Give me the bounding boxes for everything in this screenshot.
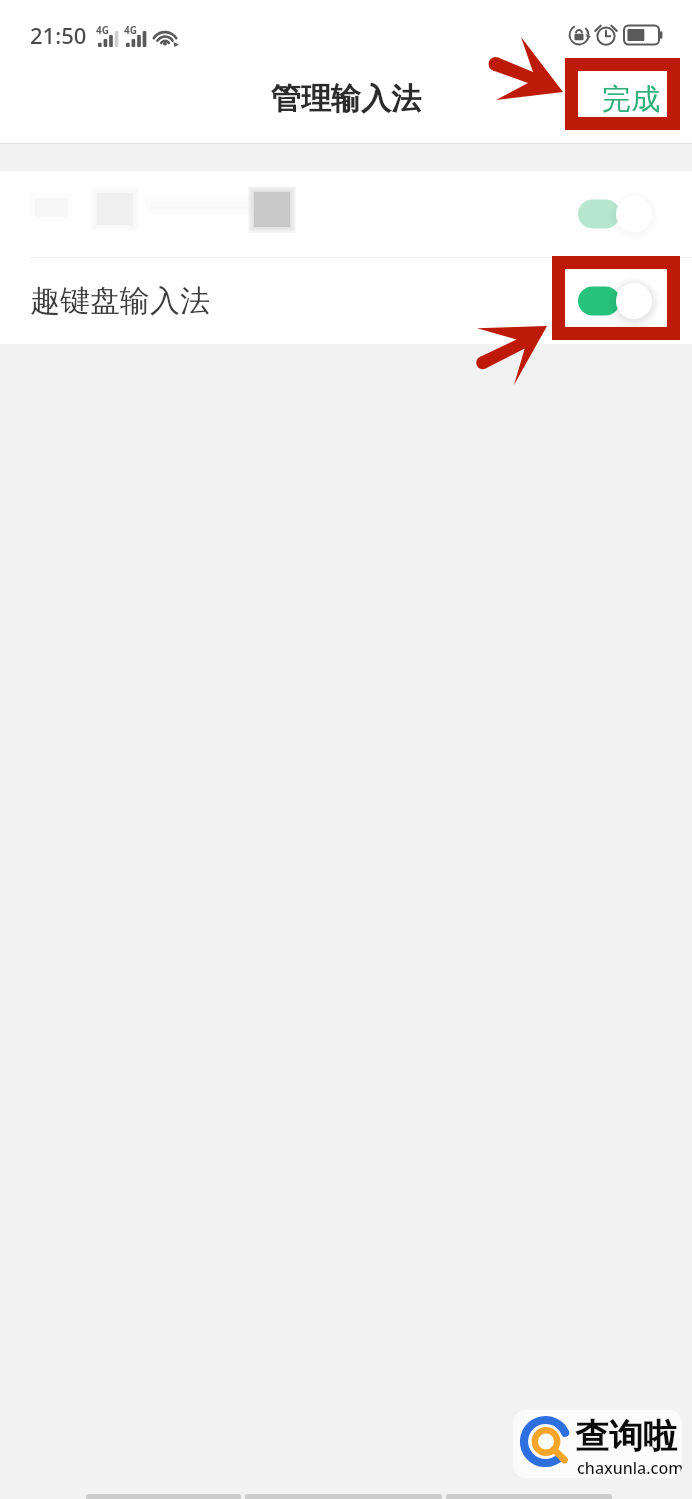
staticText: 4G — [124, 23, 137, 37]
staticText: 21:50 — [30, 20, 87, 50]
button[interactable] — [0, 171, 692, 257]
button[interactable]: 趣键盘输入法 — [0, 258, 692, 344]
staticText: chaxunla.com — [577, 1457, 682, 1478]
staticText: 查询啦 — [575, 1415, 677, 1458]
staticText: 4G — [96, 23, 109, 37]
staticText: 趣键盘输入法 — [30, 282, 210, 320]
button[interactable]: 完成 — [588, 71, 674, 128]
staticText: 管理输入法 — [271, 80, 421, 118]
staticText: 完成 — [602, 81, 660, 118]
